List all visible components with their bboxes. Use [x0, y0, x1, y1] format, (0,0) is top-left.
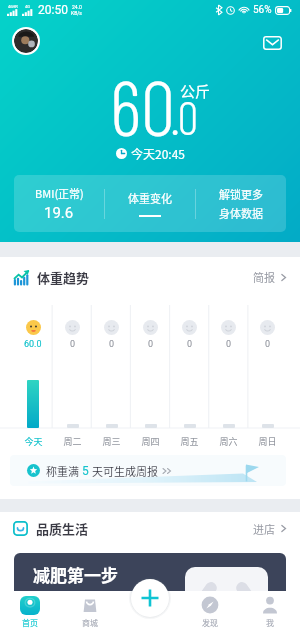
staticText: 解锁更多	[219, 186, 263, 202]
button[interactable]: 发现	[180, 591, 240, 633]
staticText: 今天20:45	[131, 145, 185, 162]
staticText: KB/s	[71, 10, 82, 16]
staticText: 首页	[22, 617, 38, 629]
staticText: 周二	[63, 435, 82, 448]
staticText: 0	[70, 339, 76, 350]
staticText: 周三	[102, 435, 121, 448]
button[interactable]: 减肥第一步	[14, 553, 286, 633]
staticText: 周日	[258, 435, 277, 448]
staticText: 称重满	[46, 463, 79, 479]
staticText: 0	[265, 339, 271, 350]
staticText: 0	[226, 339, 232, 350]
staticText: 我	[266, 617, 274, 629]
staticText: 60.0	[24, 339, 42, 350]
button[interactable]: Add record	[131, 579, 169, 617]
button[interactable]: 体重趋势	[13, 257, 288, 297]
staticText: 公斤	[180, 80, 211, 102]
staticText: 周四	[141, 435, 160, 448]
staticText: 减肥第一步	[33, 562, 118, 587]
staticText: 0	[109, 339, 115, 350]
button[interactable]: 体重变化	[105, 175, 195, 232]
staticText: 56%	[253, 4, 272, 16]
staticText: 品质生活	[36, 519, 89, 538]
staticText: 周五	[180, 435, 199, 448]
staticText: 20:50	[38, 3, 68, 17]
button[interactable]: BMI(正常)	[14, 175, 104, 232]
staticText: BMI(正常)	[35, 185, 84, 201]
staticText: 天可生成周报	[92, 463, 158, 479]
staticText: 24.0	[72, 4, 82, 10]
button[interactable]: 首页	[0, 591, 60, 633]
button[interactable]: 解锁更多	[196, 175, 286, 232]
staticText: .0	[171, 89, 199, 144]
button[interactable]: 我	[240, 591, 300, 633]
staticText: 进店	[253, 521, 275, 537]
staticText: 46HR	[8, 4, 18, 9]
button[interactable]: Profile	[14, 29, 38, 53]
staticText: 0	[187, 339, 193, 350]
staticText: 周六	[219, 435, 238, 448]
staticText: 简报	[253, 269, 275, 285]
button[interactable]: Messages	[259, 30, 285, 56]
staticText: 商城	[82, 617, 98, 629]
button[interactable]: 商城	[60, 591, 120, 633]
staticText: 60	[110, 59, 175, 151]
button[interactable]: 品质生活	[13, 512, 288, 545]
staticText: 身体数据	[219, 205, 263, 221]
button[interactable]: 称重满	[10, 455, 286, 486]
staticText: 0	[148, 339, 154, 350]
staticText: 5	[79, 464, 92, 478]
staticText: 4G	[25, 4, 30, 9]
staticText: 体重趋势	[37, 268, 90, 287]
staticText: 19.6	[44, 204, 74, 222]
staticText: 发现	[202, 617, 218, 629]
staticText: 体重变化	[128, 190, 172, 206]
staticText: 今天	[24, 435, 43, 448]
